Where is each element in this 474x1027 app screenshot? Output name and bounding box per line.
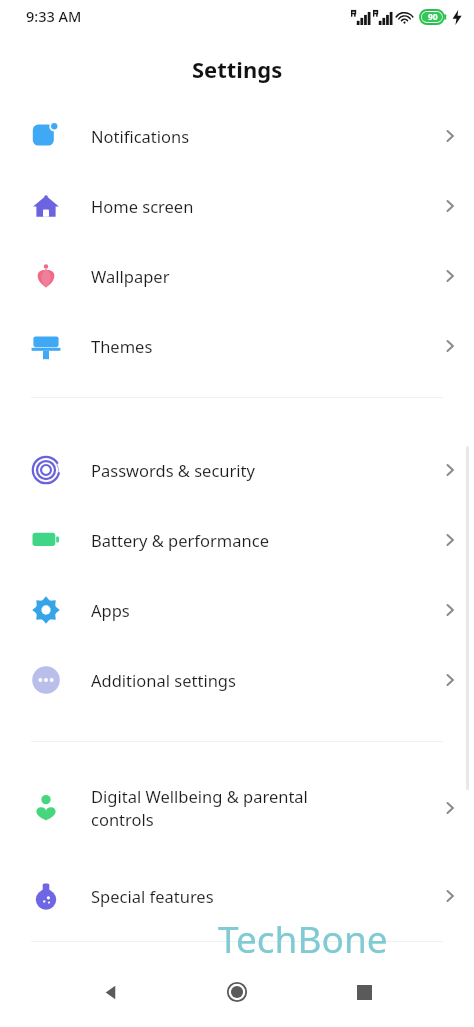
button[interactable]: Apps [0, 579, 474, 641]
staticText: Themes [91, 335, 426, 357]
staticText: Passwords & security [91, 459, 426, 481]
button[interactable]: Themes [0, 315, 474, 377]
staticText: Notifications [91, 125, 426, 147]
staticText: Additional settings [91, 669, 426, 691]
button[interactable]: Battery & performance [0, 509, 474, 571]
staticText: Digital Wellbeing & parental controls [91, 785, 426, 831]
staticText: Wallpaper [91, 265, 426, 287]
button[interactable]: Home screen [0, 175, 474, 237]
button[interactable]: Recent apps [336, 964, 392, 1020]
button[interactable]: Home [209, 964, 265, 1020]
staticText: Battery & performance [91, 529, 426, 551]
button[interactable]: Wallpaper [0, 245, 474, 307]
button[interactable]: Passwords & security [0, 439, 474, 501]
button[interactable]: Back [83, 964, 139, 1020]
staticText: 90 [428, 11, 438, 23]
staticText: Apps [91, 599, 426, 621]
staticText: Settings [192, 54, 283, 84]
button[interactable]: Additional settings [0, 649, 474, 711]
button[interactable]: Special features [0, 865, 474, 927]
staticText: Special features [91, 885, 426, 907]
staticText: 9:33 AM [26, 6, 82, 26]
staticText: Home screen [91, 195, 426, 217]
button[interactable]: Notifications [0, 105, 474, 167]
button[interactable]: Digital Wellbeing & parental controls [0, 773, 474, 843]
staticText: TechBone [218, 913, 388, 959]
